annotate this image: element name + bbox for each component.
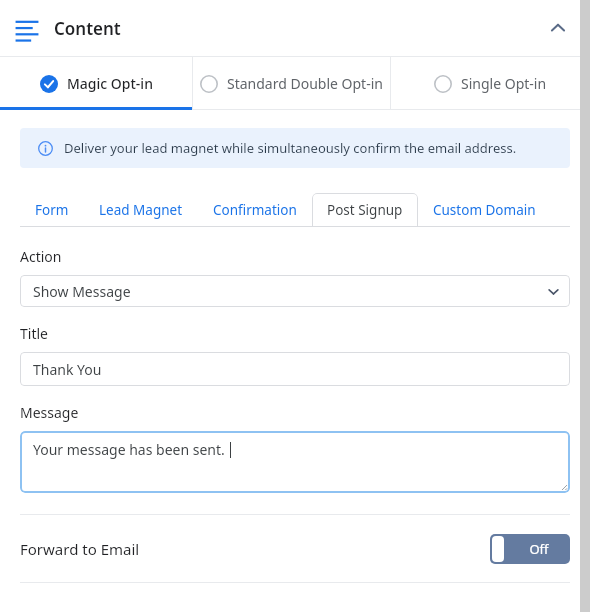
button[interactable]: Lead Magnet: [99, 193, 183, 227]
button[interactable]: Thank You: [20, 352, 570, 386]
staticText: Title: [20, 324, 48, 343]
staticText: Standard Double Opt-in: [227, 74, 383, 93]
staticText: Off: [529, 540, 549, 558]
staticText: Content: [54, 17, 121, 40]
staticText: Forward to Email: [20, 539, 140, 559]
button[interactable]: Forward to Email toggle, Off: [490, 534, 570, 564]
button[interactable]: Deliver your lead magnet while simultane…: [20, 128, 570, 168]
button[interactable]: Custom Domain: [433, 193, 536, 227]
staticText: Show Message: [33, 282, 131, 301]
button[interactable]: Single Opt-in: [391, 57, 590, 110]
staticText: Confirmation: [213, 201, 297, 219]
staticText: Post Signup: [327, 201, 403, 219]
button[interactable]: Post Signup: [327, 193, 403, 227]
button[interactable]: Magic Opt-in: [0, 57, 192, 110]
button[interactable]: Collapse: [540, 10, 576, 46]
button[interactable]: Confirmation: [213, 193, 297, 227]
button[interactable]: Standard Double Opt-in: [193, 57, 390, 110]
staticText: Thank You: [33, 360, 102, 379]
staticText: Message: [20, 403, 79, 422]
staticText: Deliver your lead magnet while simultane…: [64, 139, 517, 157]
staticText: Form: [35, 201, 69, 219]
staticText: Custom Domain: [433, 201, 536, 219]
button[interactable]: Your message has been sent.: [20, 431, 570, 493]
staticText: Your message has been sent.: [33, 440, 225, 459]
staticText: Lead Magnet: [99, 201, 183, 219]
staticText: Magic Opt-in: [67, 74, 153, 93]
button[interactable]: Content: [0, 0, 590, 56]
button[interactable]: Form: [35, 193, 69, 227]
staticText: Single Opt-in: [461, 74, 547, 93]
staticText: Action: [20, 247, 62, 266]
button[interactable]: Show Message: [20, 275, 570, 307]
